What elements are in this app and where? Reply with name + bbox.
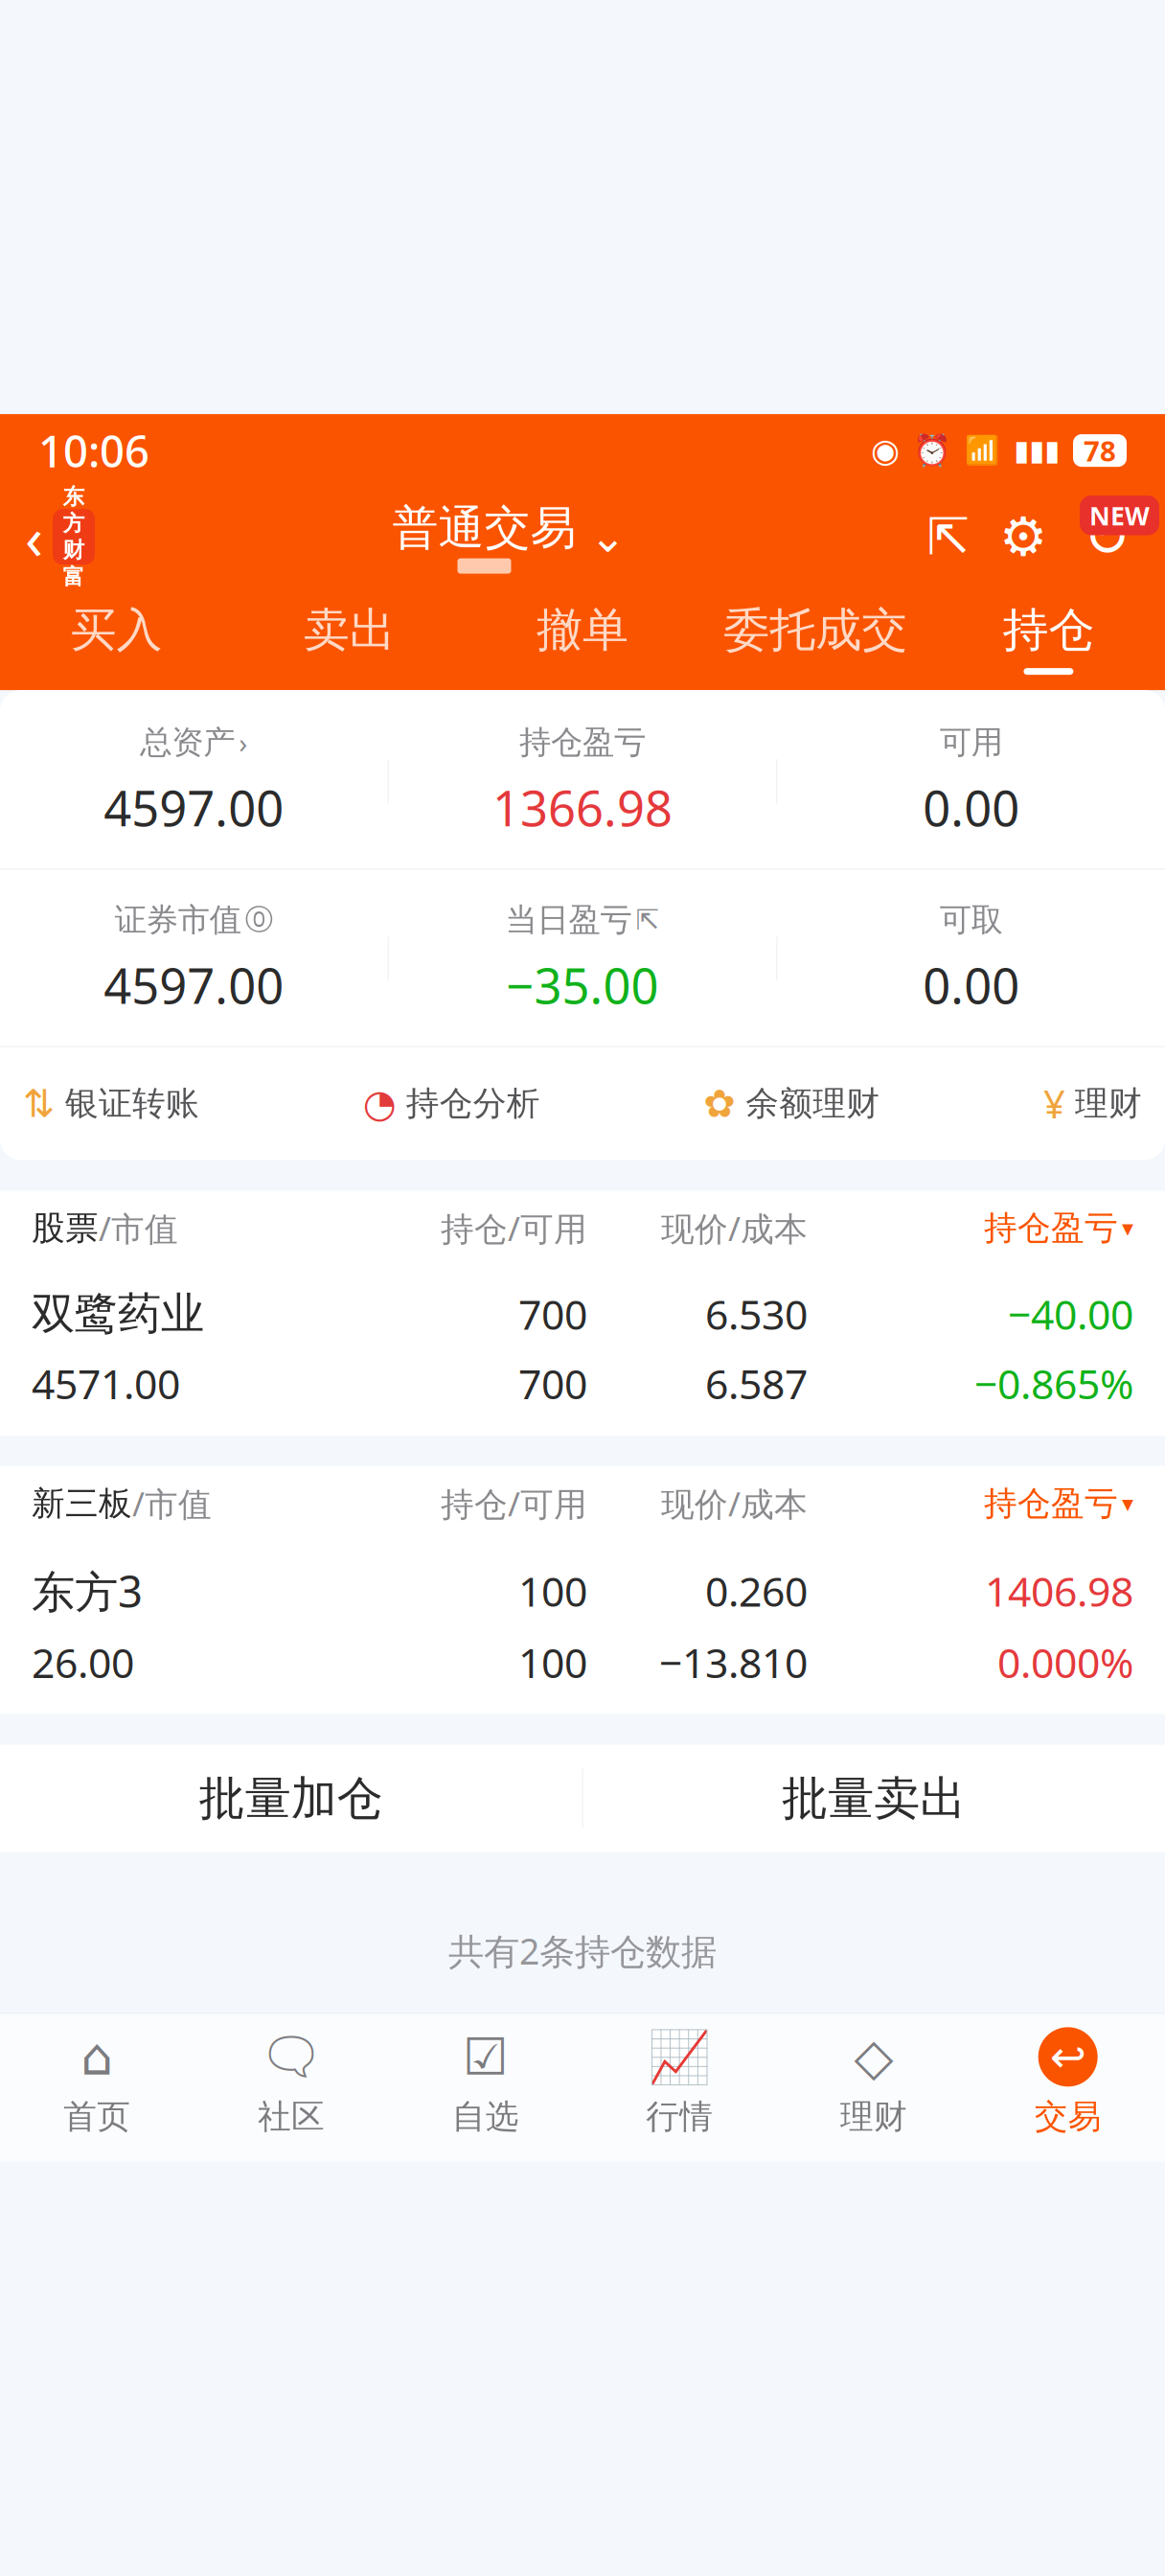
staticText: 批量卖出 bbox=[782, 1770, 966, 1827]
staticText: 700 bbox=[518, 1287, 587, 1341]
staticText: −40.00 bbox=[1008, 1287, 1133, 1341]
staticText: 委托成交 bbox=[724, 602, 907, 658]
staticText: ⇅ bbox=[23, 1082, 56, 1125]
staticText: 4597.00 bbox=[104, 953, 284, 1017]
button[interactable]: 🗨 bbox=[194, 2027, 388, 2137]
staticText: 持仓盈亏 bbox=[519, 723, 646, 762]
staticText: ▾ bbox=[1122, 1490, 1133, 1517]
staticText: ⚙ bbox=[999, 506, 1047, 567]
staticText: 股票 bbox=[32, 1208, 99, 1249]
button[interactable]: 卖出 bbox=[233, 587, 466, 690]
staticText: ✿ bbox=[704, 1082, 736, 1125]
staticText: ⌄ bbox=[590, 512, 626, 561]
staticText: ↻ bbox=[1083, 505, 1130, 569]
button[interactable]: ◇ bbox=[777, 2027, 971, 2137]
staticText: ⇱ bbox=[927, 508, 970, 566]
staticText: 100 bbox=[518, 1564, 587, 1618]
staticText: 持仓分析 bbox=[406, 1083, 540, 1124]
staticText: ¥ bbox=[1043, 1078, 1065, 1129]
staticText: 买入 bbox=[71, 602, 162, 658]
staticText: 现价/成本 bbox=[661, 1481, 808, 1526]
staticText: 理财 bbox=[840, 2096, 907, 2137]
staticText: 银证转账 bbox=[65, 1083, 199, 1124]
staticText: › bbox=[239, 724, 247, 761]
staticText: ☑ bbox=[462, 2028, 508, 2086]
button[interactable]: 委托成交 bbox=[699, 587, 932, 690]
staticText: −0.865% bbox=[974, 1356, 1133, 1411]
staticText: 交易 bbox=[1034, 2096, 1101, 2137]
staticText: 东方 bbox=[63, 483, 85, 537]
staticText: NEW bbox=[1089, 498, 1150, 532]
staticText: 持仓/可用 bbox=[441, 1206, 587, 1250]
staticText: 东方3 bbox=[32, 1562, 143, 1620]
staticText: 持仓盈亏 bbox=[984, 1208, 1118, 1249]
staticText: 社区 bbox=[258, 2096, 325, 2137]
staticText: 🗨 bbox=[259, 2028, 324, 2086]
staticText: 双鹭药业 bbox=[32, 1287, 204, 1340]
staticText: 📶 bbox=[965, 434, 1000, 467]
staticText: 卖出 bbox=[304, 602, 395, 658]
button[interactable]: ⌂ bbox=[0, 2027, 194, 2137]
staticText: 26.00 bbox=[32, 1635, 134, 1689]
button[interactable]: 持仓盈亏 bbox=[808, 1483, 1133, 1524]
staticText: 可取 bbox=[940, 900, 1003, 939]
button[interactable]: 设置 bbox=[998, 509, 1048, 565]
staticText: 100 bbox=[518, 1635, 587, 1689]
button[interactable]: 返回 bbox=[25, 498, 95, 576]
staticText: 共有2条持仓数据 bbox=[448, 1927, 717, 1974]
staticText: 0.260 bbox=[705, 1564, 808, 1618]
staticText: 余额理财 bbox=[746, 1083, 880, 1124]
staticText: ⇱ bbox=[636, 904, 660, 936]
staticText: 10:06 bbox=[38, 422, 149, 479]
staticText: 6.587 bbox=[705, 1356, 808, 1411]
staticText: ◇ bbox=[854, 2028, 893, 2086]
button[interactable]: 撤单 bbox=[466, 587, 699, 690]
button[interactable]: 持仓 bbox=[932, 587, 1165, 690]
button[interactable]: ⇅ bbox=[23, 1082, 199, 1125]
button[interactable]: 📈 bbox=[582, 2027, 777, 2137]
staticText: 首页 bbox=[64, 2096, 131, 2137]
staticText: 1366.98 bbox=[492, 775, 673, 840]
button[interactable]: ◔ bbox=[363, 1082, 540, 1125]
staticText: ⏰ bbox=[913, 433, 951, 468]
staticText: 现价/成本 bbox=[661, 1206, 808, 1250]
staticText: 700 bbox=[518, 1356, 587, 1411]
staticText: 0.00 bbox=[923, 953, 1020, 1017]
staticText: 📈 bbox=[648, 2028, 711, 2086]
staticText: 当日盈亏 bbox=[505, 900, 632, 939]
staticText: 理财 bbox=[1075, 1083, 1142, 1124]
staticText: 1406.98 bbox=[985, 1564, 1133, 1618]
button[interactable]: 批量加仓 bbox=[0, 1745, 582, 1852]
button[interactable]: ☑ bbox=[388, 2027, 582, 2137]
button[interactable]: 普通交易 bbox=[392, 500, 626, 574]
staticText: 78 bbox=[1084, 432, 1116, 469]
staticText: 财富 bbox=[63, 537, 85, 590]
button[interactable]: ✿ bbox=[704, 1082, 880, 1125]
staticText: 自选 bbox=[452, 2096, 519, 2137]
staticText: 4597.00 bbox=[104, 775, 284, 840]
staticText: 持仓 bbox=[1003, 602, 1094, 658]
staticText: 4571.00 bbox=[32, 1356, 180, 1411]
button[interactable]: 东方3 bbox=[0, 1541, 1165, 1714]
button[interactable]: ¥ bbox=[1043, 1078, 1142, 1129]
staticText: 行情 bbox=[646, 2096, 713, 2137]
staticText: 可用 bbox=[940, 723, 1003, 762]
button[interactable]: 分享 bbox=[924, 509, 973, 565]
button[interactable]: 买入 bbox=[0, 587, 233, 690]
staticText: 撤单 bbox=[537, 602, 628, 658]
staticText: ◉ bbox=[871, 432, 900, 469]
staticText: 0.00 bbox=[923, 775, 1020, 840]
staticText: 新三板 bbox=[32, 1483, 132, 1524]
staticText: 批量加仓 bbox=[199, 1770, 383, 1827]
button[interactable]: 批量卖出 bbox=[583, 1745, 1165, 1852]
staticText: ‹ bbox=[25, 498, 43, 576]
staticText: ⌂ bbox=[81, 2028, 113, 2086]
button[interactable]: 刷新 bbox=[1073, 509, 1140, 565]
button[interactable]: ↩ bbox=[971, 2027, 1165, 2137]
button[interactable]: 双鹭药业 bbox=[0, 1266, 1165, 1435]
staticText: 0.000% bbox=[997, 1635, 1133, 1689]
staticText: 普通交易 bbox=[392, 500, 576, 556]
staticText: ◔ bbox=[363, 1082, 396, 1125]
button[interactable]: 持仓盈亏 bbox=[808, 1208, 1133, 1249]
staticText: 证券市值 bbox=[115, 900, 241, 939]
